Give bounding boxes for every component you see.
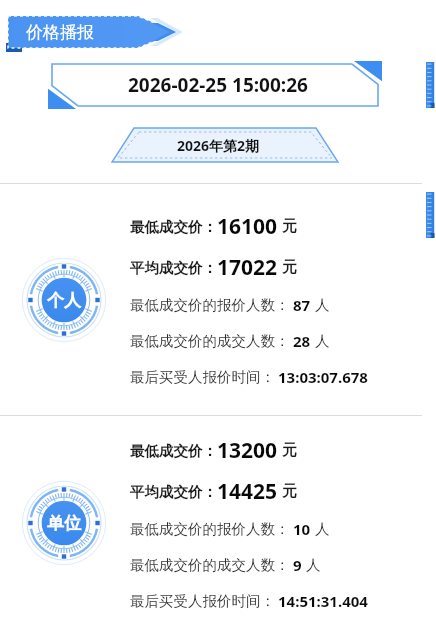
staticText: 17022 — [217, 253, 278, 282]
staticText: 最后买受人报价时间： — [130, 368, 275, 386]
button[interactable]: 价格播报 — [0, 14, 436, 50]
staticText: 14:51:31.404 — [278, 591, 368, 611]
staticText: 单位 — [47, 513, 81, 534]
other: 个人 — [21, 257, 107, 343]
staticText: 2026年第2期 — [177, 136, 260, 155]
staticText: 16100 — [217, 212, 278, 241]
staticText: 10 — [293, 519, 311, 539]
staticText: 28 — [293, 331, 311, 351]
staticText: 最低成交价的报价人数： — [130, 520, 290, 538]
staticText: 13200 — [217, 436, 278, 465]
other: 单位 — [21, 480, 107, 566]
staticText: 9 — [293, 555, 302, 575]
staticText: 元 — [282, 482, 297, 501]
staticText: 人 — [306, 556, 321, 574]
staticText: 最低成交价： — [130, 218, 217, 236]
staticText: 最后买受人报价时间： — [130, 592, 275, 610]
staticText: 13:03:07.678 — [278, 367, 368, 387]
staticText: 最低成交价的成交人数： — [130, 332, 290, 350]
staticText: 人 — [315, 520, 330, 538]
staticText: 最低成交价的报价人数： — [130, 296, 290, 314]
staticText: 人 — [315, 296, 330, 314]
staticText: 最低成交价： — [130, 442, 217, 460]
button[interactable]: Side tab — [426, 62, 436, 108]
staticText: 元 — [282, 441, 297, 460]
staticText: 人 — [315, 332, 330, 350]
staticText: 2026-02-25 15:00:26 — [128, 72, 308, 98]
staticText: 价格播报 — [26, 22, 94, 43]
button[interactable]: 单位 — [0, 416, 436, 630]
staticText: 最低成交价的成交人数： — [130, 556, 290, 574]
button[interactable]: Side tab — [426, 192, 436, 238]
button[interactable]: 个人 — [0, 184, 436, 415]
staticText: 平均成交价： — [130, 483, 217, 501]
staticText: 平均成交价： — [130, 259, 217, 277]
staticText: 14425 — [217, 477, 278, 506]
staticText: 元 — [282, 217, 297, 236]
staticText: 87 — [293, 295, 311, 315]
staticText: 元 — [282, 258, 297, 277]
staticText: 个人 — [47, 290, 81, 311]
